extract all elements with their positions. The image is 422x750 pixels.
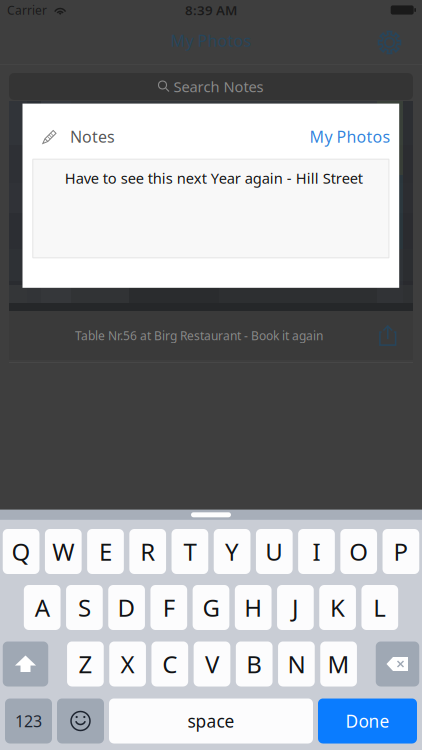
staticText: P — [393, 536, 408, 567]
staticText: Q — [12, 536, 31, 567]
button[interactable]: Share — [375, 324, 401, 346]
staticText: Carrier — [7, 2, 47, 18]
staticText: T — [183, 536, 196, 567]
button[interactable]: Y — [214, 529, 250, 574]
staticText: Done — [345, 709, 389, 732]
staticText: K — [330, 592, 345, 623]
staticText: V — [205, 648, 219, 680]
staticText: R — [140, 536, 155, 567]
button[interactable]: Delete — [376, 641, 419, 686]
staticText: My Photos — [310, 126, 391, 147]
button[interactable]: N — [278, 641, 315, 686]
staticText: D — [118, 592, 136, 623]
button[interactable]: V — [194, 641, 230, 686]
staticText: C — [162, 648, 177, 680]
button[interactable]: M — [320, 641, 357, 686]
staticText: O — [349, 536, 368, 567]
button[interactable]: O — [340, 529, 377, 574]
button[interactable]: Emoji — [57, 698, 104, 743]
button[interactable]: I — [298, 529, 335, 574]
button[interactable]: C — [151, 641, 188, 686]
button[interactable]: X — [109, 641, 146, 686]
button[interactable]: D — [108, 585, 145, 630]
button[interactable]: H — [235, 585, 272, 630]
button[interactable]: K — [319, 585, 356, 630]
button[interactable]: Shift — [3, 641, 48, 686]
staticText: space — [187, 709, 234, 732]
staticText: H — [244, 592, 262, 623]
staticText: S — [78, 592, 91, 623]
staticText: Search Notes — [173, 77, 263, 96]
staticText: W — [52, 536, 74, 567]
button[interactable]: A — [24, 585, 61, 630]
button[interactable]: L — [361, 585, 398, 630]
staticText: X — [121, 648, 135, 680]
staticText: Notes — [70, 126, 115, 147]
button[interactable]: E — [87, 529, 124, 574]
button[interactable]: My Photos — [310, 126, 391, 147]
staticText: My Photos — [170, 30, 251, 51]
staticText: E — [99, 536, 112, 567]
staticText: I — [312, 536, 320, 567]
staticText: N — [287, 648, 305, 680]
staticText: 123 — [15, 710, 42, 732]
button[interactable]: W — [45, 529, 82, 574]
staticText: Y — [225, 536, 239, 567]
staticText: Have to see this next Year again - Hill … — [65, 168, 363, 188]
button[interactable]: F — [150, 585, 187, 630]
staticText: J — [292, 592, 299, 623]
button[interactable]: U — [256, 529, 293, 574]
button[interactable]: T — [172, 529, 208, 574]
button[interactable]: Settings — [371, 24, 408, 61]
button[interactable]: Done — [318, 698, 417, 743]
button[interactable]: R — [129, 529, 166, 574]
button[interactable]: space — [109, 698, 313, 743]
staticText: M — [328, 648, 350, 680]
button[interactable]: B — [236, 641, 273, 686]
button[interactable]: S — [66, 585, 103, 630]
staticText: L — [373, 592, 386, 623]
staticText: Z — [78, 648, 92, 680]
button[interactable]: G — [193, 585, 229, 630]
staticText: G — [202, 592, 219, 623]
button[interactable]: Z — [67, 641, 104, 686]
staticText: B — [246, 648, 262, 680]
staticText: A — [35, 592, 50, 623]
button[interactable]: 123 — [5, 698, 52, 743]
staticText: U — [265, 536, 283, 567]
button[interactable]: J — [277, 585, 314, 630]
staticText: 8:39 AM — [185, 1, 237, 19]
button[interactable]: P — [382, 529, 419, 574]
button[interactable]: Q — [3, 529, 39, 574]
staticText: F — [163, 592, 175, 623]
staticText: Table Nr.56 at Birg Restaurant - Book it… — [75, 327, 323, 343]
